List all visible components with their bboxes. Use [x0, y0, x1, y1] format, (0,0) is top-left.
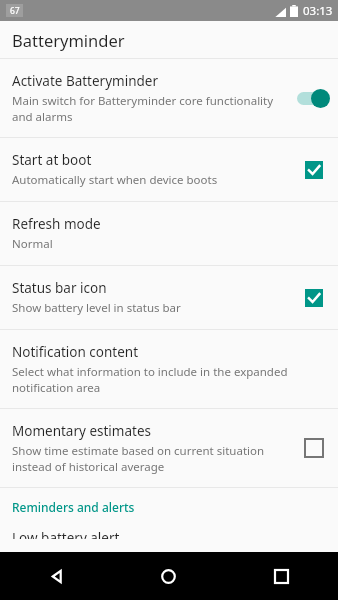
button[interactable]: Status bar icon checkbox	[294, 278, 334, 318]
staticText: Start at boot	[12, 151, 92, 169]
staticText: Main switch for Batteryminder core funct…	[12, 93, 282, 124]
staticText: Momentary estimates	[12, 422, 151, 440]
button[interactable]: Activate Batteryminder	[0, 59, 338, 137]
button[interactable]: Home	[112, 552, 225, 600]
button[interactable]: Start at boot	[0, 138, 338, 201]
button[interactable]: Status bar icon	[0, 266, 338, 329]
button[interactable]: Start at boot checkbox	[294, 150, 334, 190]
button[interactable]: Back	[0, 552, 112, 600]
button[interactable]: Notification content	[0, 330, 338, 408]
staticText: Show time estimate based on current situ…	[12, 443, 286, 474]
button[interactable]: Low battery alert	[0, 522, 338, 552]
staticText: Activate Batteryminder	[12, 72, 159, 90]
button[interactable]: Refresh mode	[0, 202, 338, 265]
staticText: Notification content	[12, 343, 139, 361]
staticText: Automatically start when device boots	[12, 172, 218, 188]
button[interactable]: Momentary estimates checkbox	[294, 428, 334, 468]
staticText: 67	[10, 5, 20, 17]
staticText: Refresh mode	[12, 215, 101, 233]
button[interactable]: Recents	[225, 552, 338, 600]
staticText: Reminders and alerts	[12, 499, 135, 515]
button[interactable]: Activate Batteryminder toggle	[290, 83, 334, 113]
staticText: Normal	[12, 236, 53, 252]
staticText: Batteryminder	[12, 29, 125, 51]
staticText: Status bar icon	[12, 279, 107, 297]
staticText: Show battery level in status bar	[12, 300, 181, 316]
staticText: Select what information to include in th…	[12, 364, 330, 395]
button[interactable]: Momentary estimates	[0, 409, 338, 487]
staticText: 03:13	[303, 3, 333, 19]
staticText: Low battery alert	[12, 529, 120, 539]
